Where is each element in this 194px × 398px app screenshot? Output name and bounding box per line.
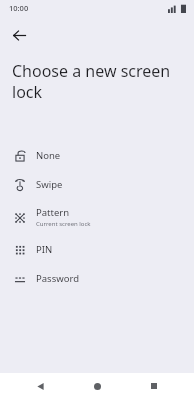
staticText: 10:00 — [9, 3, 29, 13]
staticText: PIN — [36, 243, 53, 256]
staticText: Swipe — [36, 178, 63, 191]
button[interactable]: Back — [28, 374, 52, 398]
button[interactable]: Pattern — [0, 199, 194, 235]
button[interactable]: Swipe — [0, 170, 194, 199]
button[interactable]: Back — [4, 20, 34, 50]
button[interactable]: None — [0, 141, 194, 170]
staticText: Password — [36, 272, 79, 285]
staticText: Current screen lock — [36, 220, 91, 228]
staticText: Choose a new screen lock — [12, 60, 180, 103]
staticText: Pattern — [36, 206, 70, 219]
button[interactable]: Recent apps — [142, 374, 166, 398]
button[interactable]: PIN — [0, 235, 194, 264]
button[interactable]: Password — [0, 264, 194, 293]
button[interactable]: Home — [85, 374, 109, 398]
staticText: None — [36, 149, 61, 162]
